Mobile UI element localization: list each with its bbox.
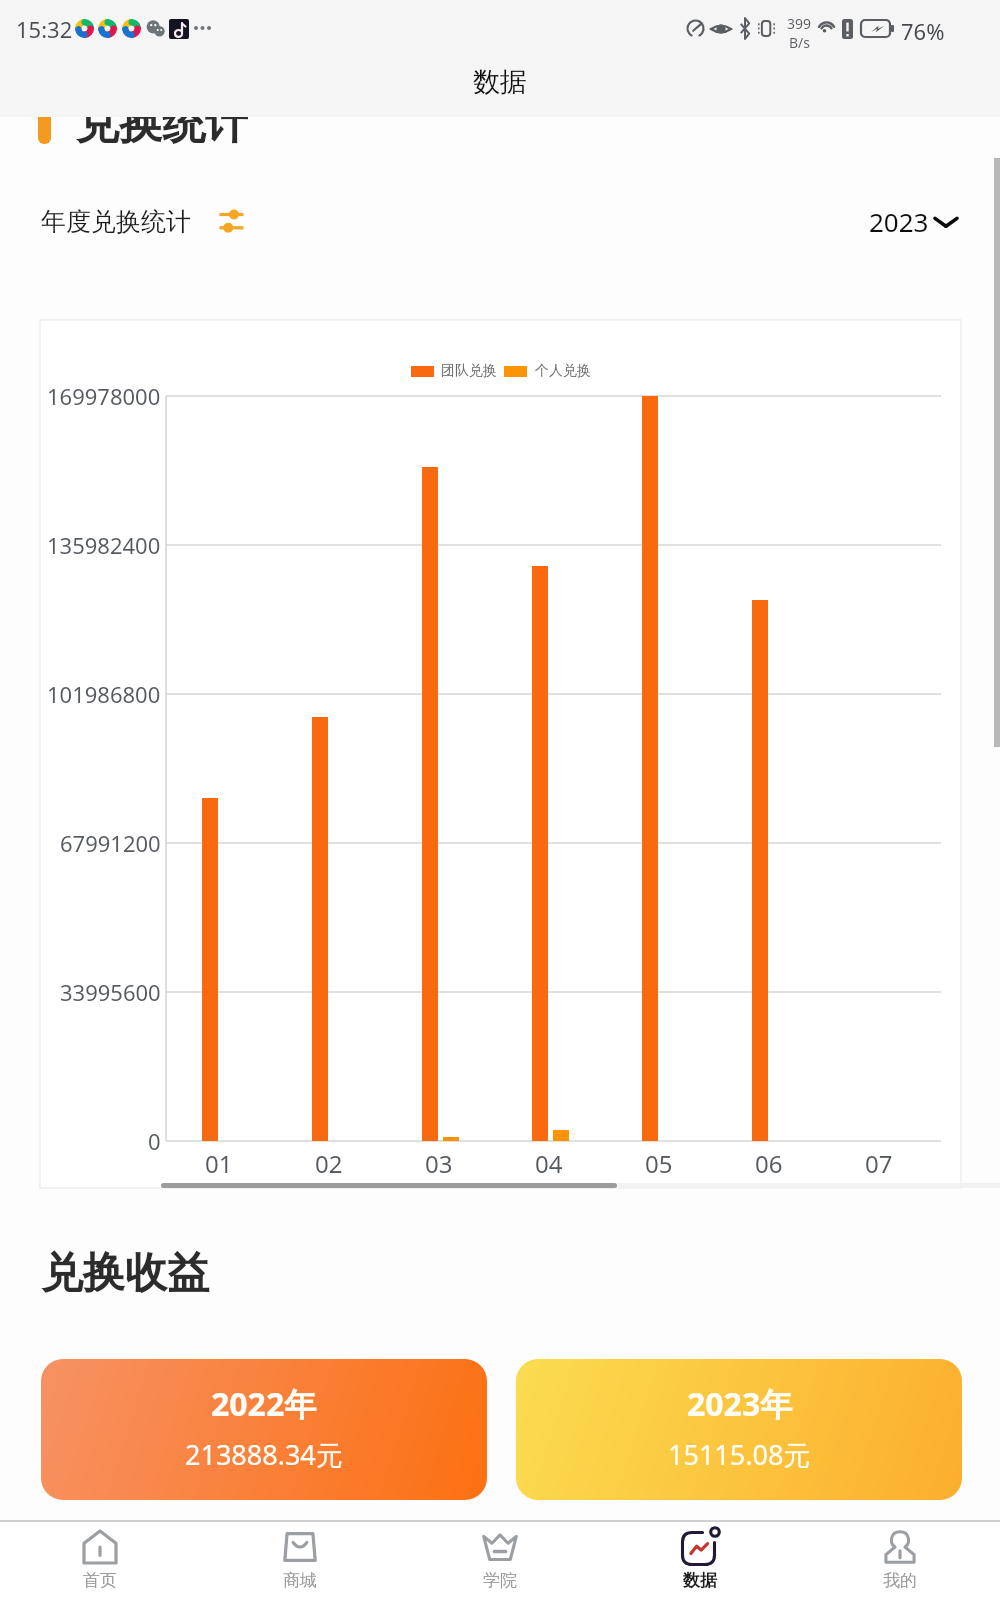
staticText: 02 — [315, 1147, 343, 1180]
staticText: 年度兑换统计 — [41, 206, 191, 237]
staticText: 169978000 — [47, 381, 161, 411]
staticText: 135982400 — [47, 530, 161, 560]
staticText: 学院 — [483, 1570, 517, 1591]
staticText: 03 — [425, 1147, 453, 1180]
button[interactable]: 数据 — [600, 1522, 800, 1600]
staticText: 兑换统计 — [76, 117, 248, 145]
staticText: 2022年 — [211, 1382, 317, 1426]
staticText: 399 — [787, 14, 812, 33]
staticText: 0 — [148, 1126, 161, 1156]
staticText: 2023 — [869, 204, 929, 239]
staticText: 101986800 — [47, 679, 161, 709]
staticText: 兑换收益 — [41, 1247, 209, 1300]
button[interactable]: 2022年 — [41, 1359, 487, 1500]
button[interactable]: 2023年 — [516, 1359, 962, 1500]
button[interactable]: 商城 — [200, 1522, 400, 1600]
staticText: 数据 — [473, 65, 527, 99]
staticText: 15115.08元 — [668, 1436, 811, 1473]
button[interactable]: 2023 — [865, 200, 965, 243]
button[interactable]: Filter — [211, 201, 251, 241]
button[interactable]: 首页 — [0, 1522, 200, 1600]
staticText: 33995600 — [60, 977, 161, 1007]
staticText: 06 — [755, 1147, 783, 1180]
button[interactable]: 学院 — [400, 1522, 600, 1600]
staticText: 我的 — [883, 1570, 917, 1591]
staticText: 67991200 — [60, 828, 161, 858]
staticText: 76% — [901, 16, 945, 46]
staticText: 数据 — [683, 1570, 717, 1591]
staticText: 05 — [645, 1147, 673, 1180]
staticText: 213888.34元 — [185, 1436, 343, 1473]
staticText: 04 — [535, 1147, 563, 1180]
staticText: 15:32 — [16, 14, 73, 44]
staticText: B/s — [789, 33, 811, 52]
button[interactable]: 我的 — [800, 1522, 1000, 1600]
staticText: 01 — [205, 1147, 233, 1180]
staticText: 个人兑换 — [535, 362, 591, 380]
staticText: 2023年 — [687, 1382, 793, 1426]
staticText: 首页 — [83, 1570, 117, 1591]
staticText: 07 — [865, 1147, 893, 1180]
staticText: 团队兑换 — [441, 362, 497, 380]
staticText: 商城 — [283, 1570, 317, 1591]
